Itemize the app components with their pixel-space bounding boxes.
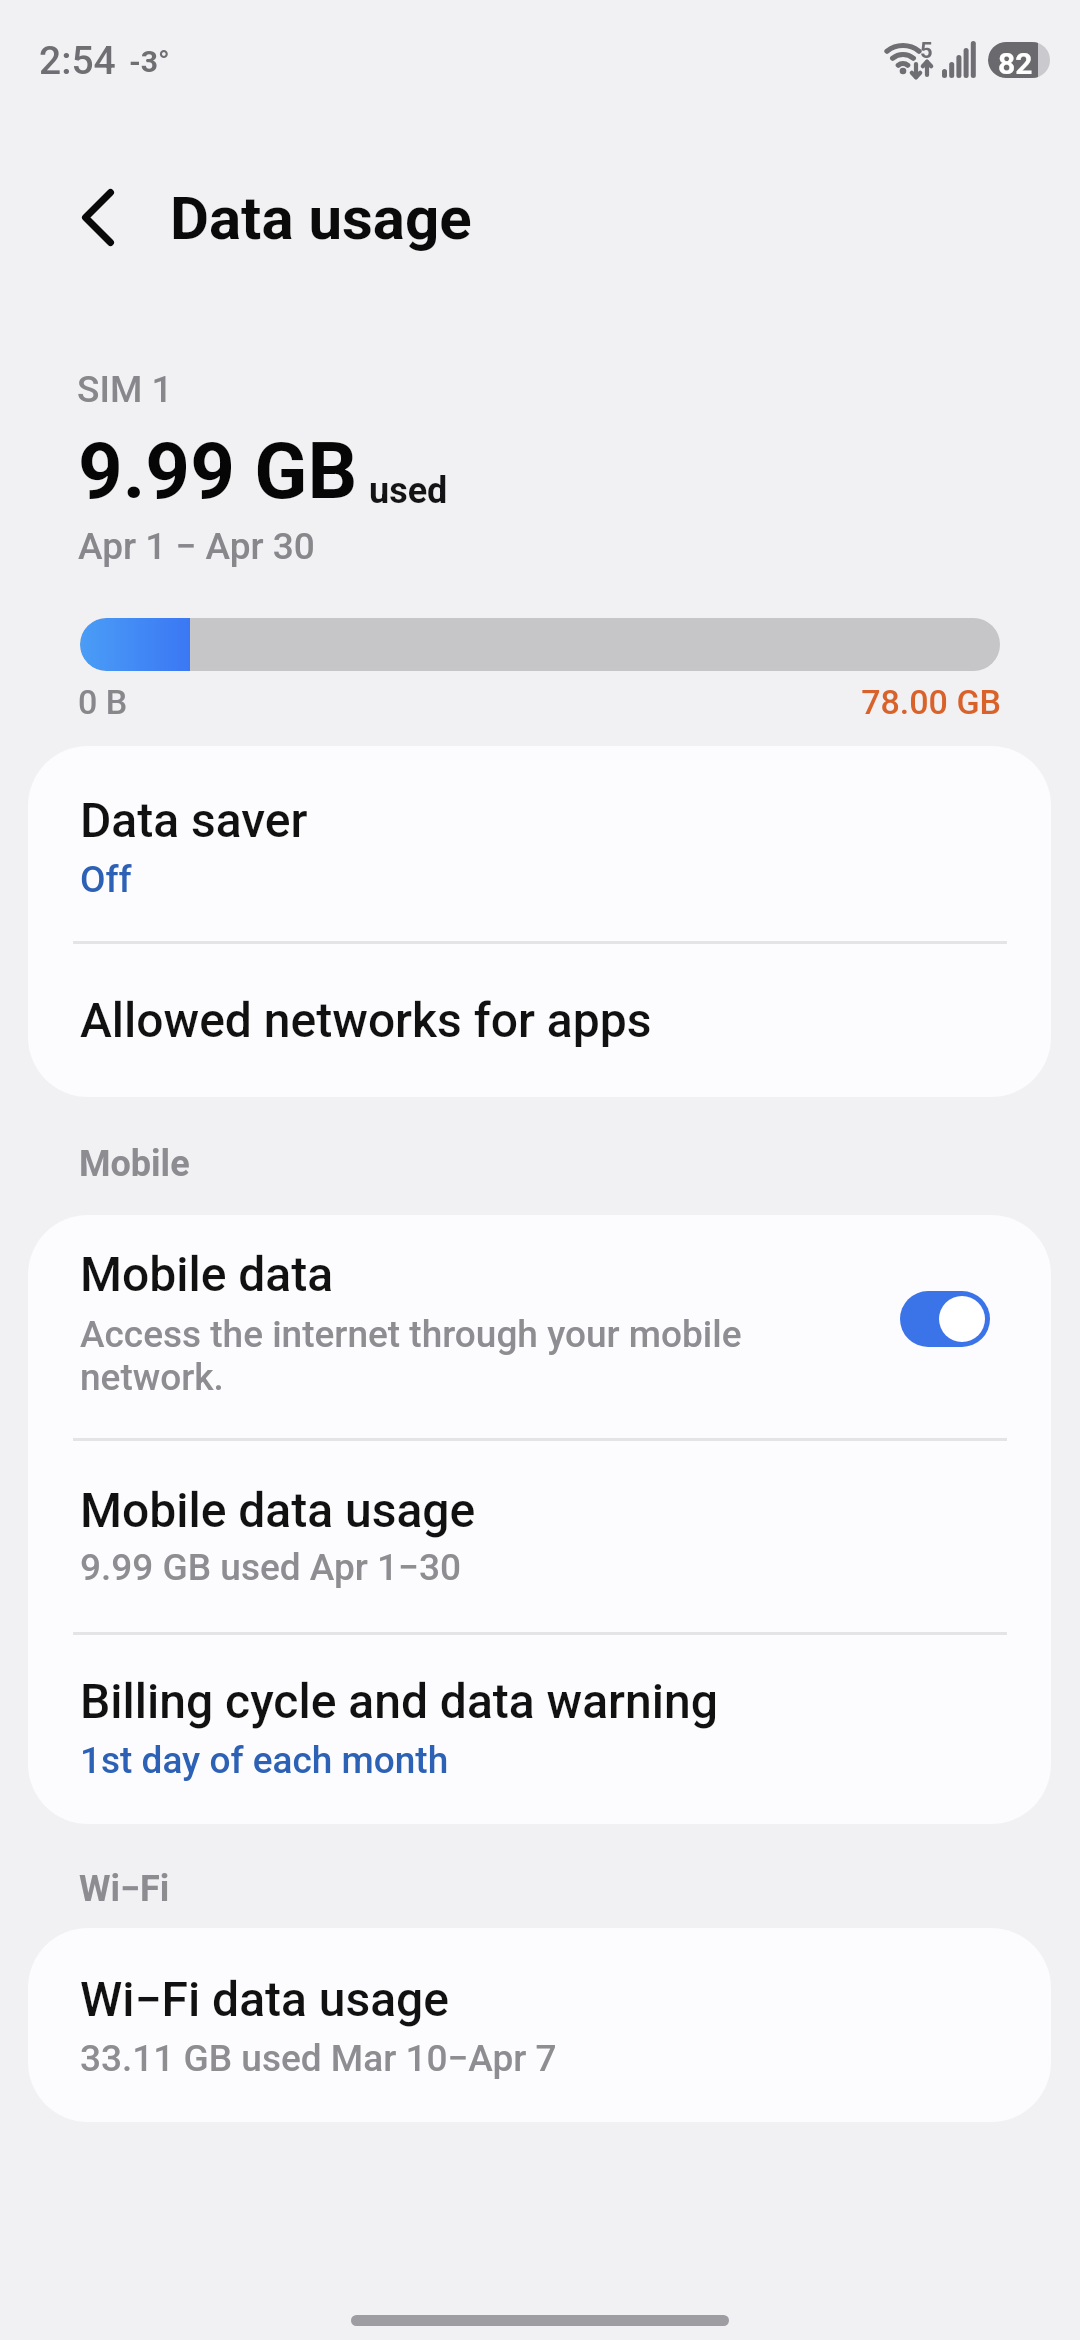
staticText: 78.00 GB [600,682,1001,722]
button[interactable]: Navigate up [34,158,154,278]
staticText: Allowed networks for apps [80,992,652,1048]
staticText: 9.99 GB [78,426,358,517]
button[interactable]: Billing cycle and data warning [28,1635,1051,1824]
staticText: Data usage [170,183,472,253]
staticText: 1st day of each month [80,1739,449,1782]
staticText: Mobile data [80,1246,334,1302]
staticText: Data saver [80,792,308,848]
staticText: Mobile [79,1143,190,1185]
staticText: Wi−Fi [79,1868,170,1910]
staticText: Wi−Fi data usage [80,1971,449,2027]
button[interactable]: Mobile data usage [28,1441,1051,1633]
staticText: used [369,470,448,512]
staticText: 33.11 GB used Mar 10−Apr 7 [80,2037,557,2080]
staticText: Access the internet through your mobile … [80,1313,780,1399]
staticText: Billing cycle and data warning [80,1673,718,1729]
button[interactable]: Mobile data [28,1215,1051,1439]
staticText: Off [80,858,132,901]
button[interactable]: Allowed networks for apps [28,944,1051,1097]
staticText: SIM 1 [77,368,173,411]
button[interactable]: Wi−Fi data usage [28,1928,1051,2122]
button[interactable]: Mobile data, on [900,1291,990,1347]
staticText: 5 [920,38,933,64]
staticText: -3° [129,44,170,79]
staticText: 0 B [78,682,128,722]
staticText: 9.99 GB used Apr 1−30 [80,1546,461,1589]
button[interactable]: Data saver [28,746,1051,942]
staticText: 2:54 [39,38,116,84]
staticText: Apr 1 − Apr 30 [78,525,315,568]
staticText: Mobile data usage [80,1482,476,1538]
staticText: 82 [998,46,1033,78]
